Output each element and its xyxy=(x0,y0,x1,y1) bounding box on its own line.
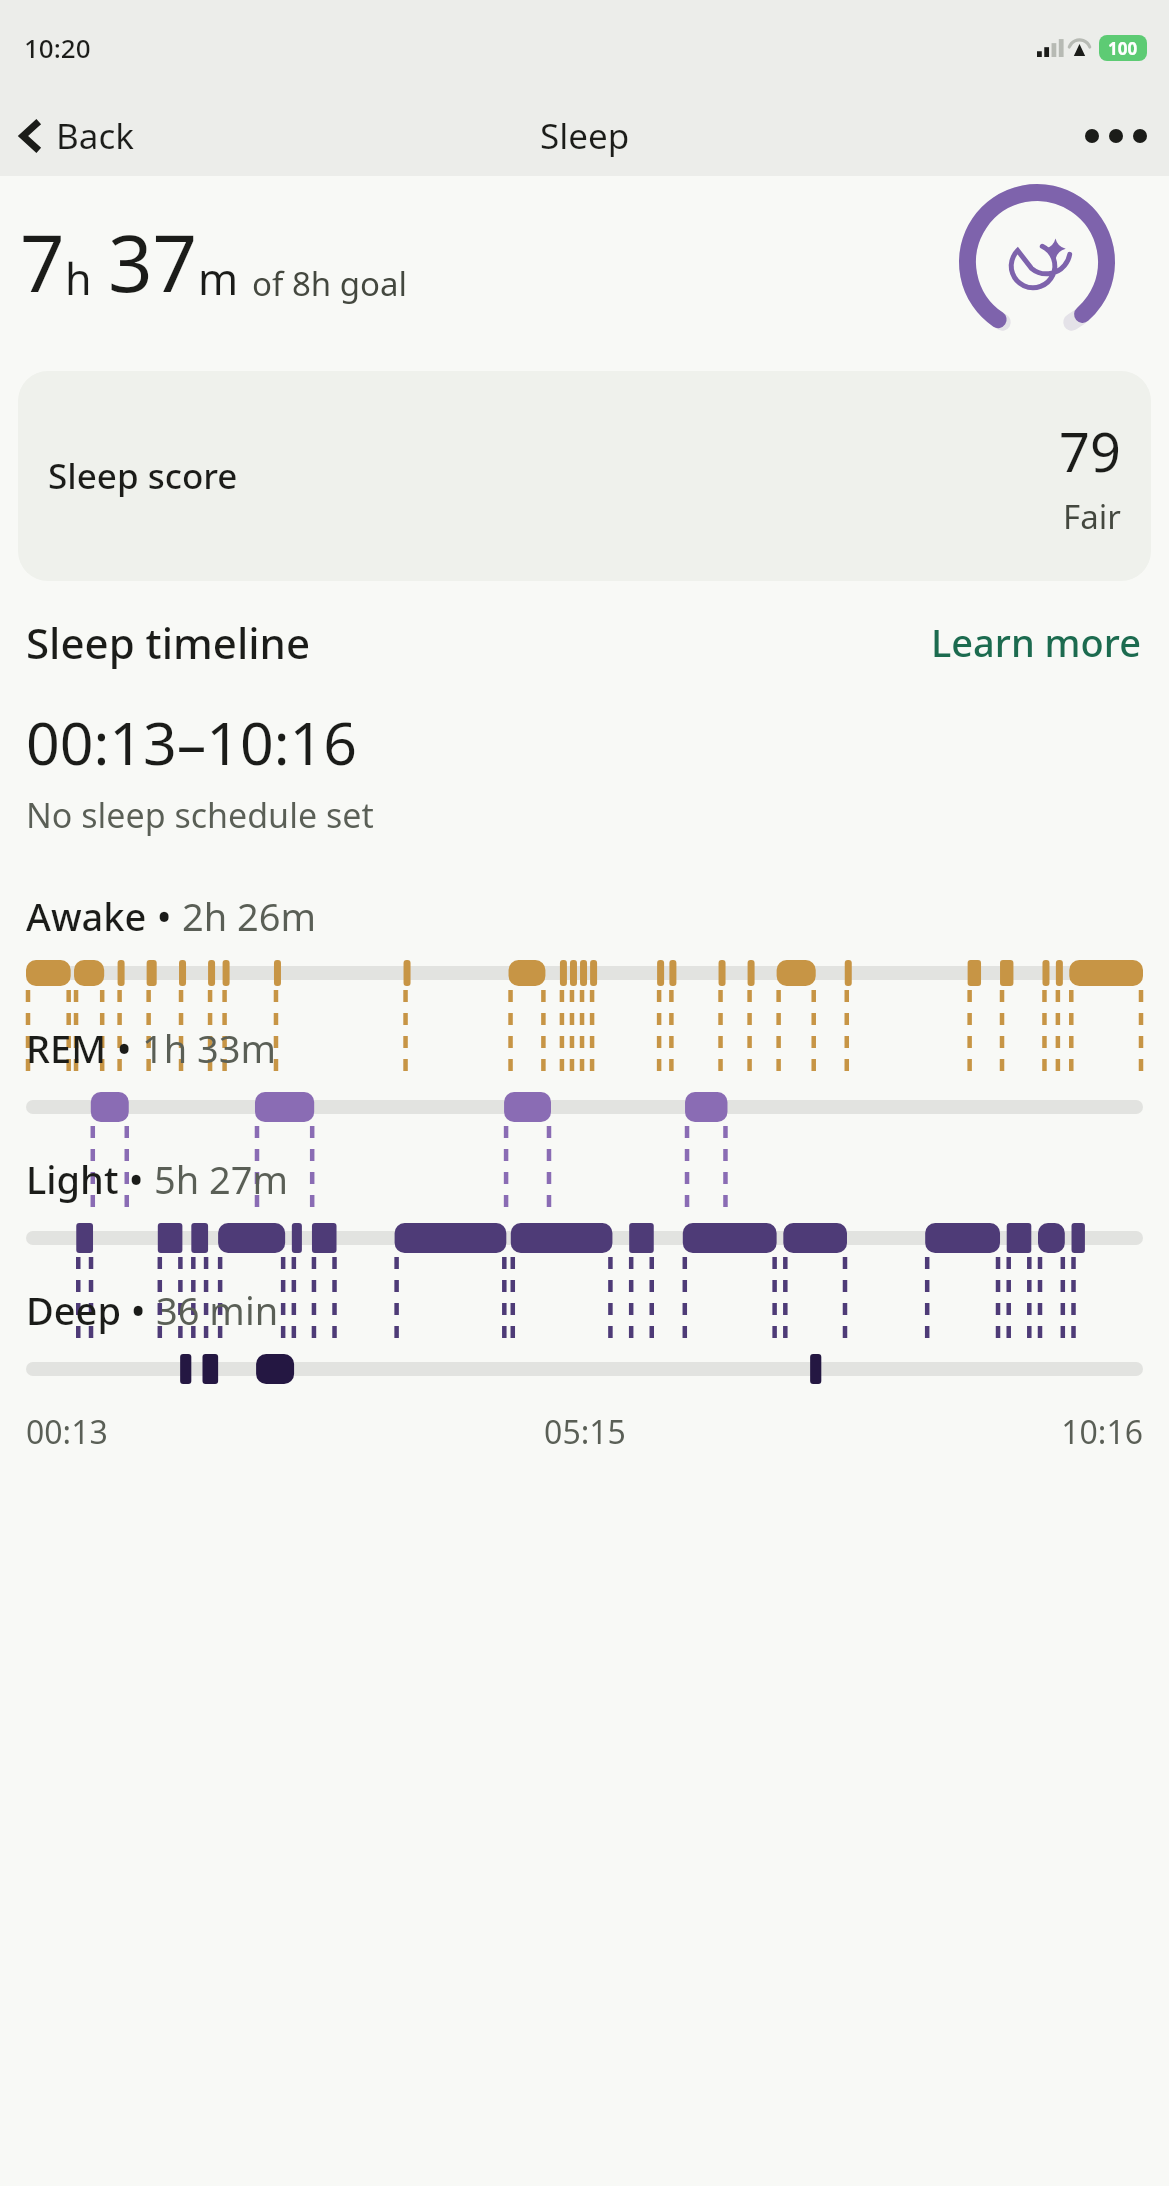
staticText: REM xyxy=(26,1022,107,1074)
staticText: 37 xyxy=(108,209,198,315)
staticText: m xyxy=(198,249,239,308)
staticText: Deep xyxy=(26,1284,121,1336)
staticText: Sleep timeline xyxy=(26,614,311,671)
staticText: 00:13 xyxy=(26,1410,399,1454)
staticText: 2h 26m xyxy=(182,890,317,942)
staticText: Fair xyxy=(1063,494,1121,539)
staticText: h xyxy=(65,249,92,308)
staticText: 05:15 xyxy=(399,1410,771,1454)
staticText: Back xyxy=(56,112,134,160)
staticText: 10:20 xyxy=(24,30,91,65)
staticText: Sleep xyxy=(540,112,630,160)
staticText: Learn more xyxy=(931,616,1141,668)
button[interactable]: Learn more xyxy=(929,610,1143,674)
staticText: 100 xyxy=(1108,37,1138,60)
staticText: 1h 33m xyxy=(142,1022,277,1074)
staticText: • xyxy=(107,1022,142,1074)
staticText: 5h 27m xyxy=(154,1153,289,1205)
staticText: 10:16 xyxy=(771,1410,1143,1454)
staticText: of 8h goal xyxy=(252,261,408,306)
button[interactable]: More options xyxy=(1063,111,1169,161)
staticText: • xyxy=(121,1284,156,1336)
staticText: No sleep schedule set xyxy=(26,792,374,838)
staticText: 79 xyxy=(1059,414,1121,488)
staticText: • xyxy=(119,1153,154,1205)
staticText: Awake xyxy=(26,890,147,942)
staticText: 00:13–10:16 xyxy=(26,702,358,782)
staticText: Light xyxy=(26,1153,119,1205)
staticText: • xyxy=(147,890,182,942)
button[interactable]: Back xyxy=(0,106,148,166)
staticText: Sleep score xyxy=(48,452,238,500)
staticText: 7 xyxy=(20,209,65,315)
staticText: 36 min xyxy=(156,1284,279,1336)
button[interactable]: Sleep score xyxy=(18,371,1151,581)
